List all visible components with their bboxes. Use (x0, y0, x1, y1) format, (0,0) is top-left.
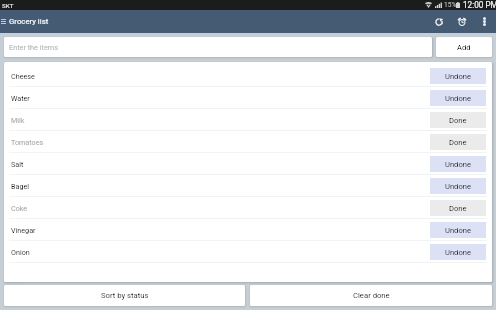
staticText: Done (449, 204, 467, 213)
button[interactable]: Vinegar (4, 219, 492, 241)
button[interactable]: Enter the items (4, 37, 432, 57)
button[interactable]: Salt (4, 153, 492, 175)
button[interactable]: Undone (430, 156, 486, 172)
button[interactable]: Refresh (427, 10, 450, 33)
staticText: Undone (445, 160, 471, 169)
staticText: Undone (445, 248, 471, 257)
staticText: Undone (445, 72, 471, 81)
staticText: Onion (11, 248, 30, 256)
button[interactable]: Open navigation drawer (0, 10, 7, 33)
staticText: Water (11, 94, 30, 102)
button[interactable]: More options (473, 10, 496, 33)
staticText: Undone (445, 182, 471, 191)
staticText: Bagel (11, 182, 29, 190)
button[interactable]: Undone (430, 244, 486, 260)
staticText: Undone (445, 226, 471, 235)
button[interactable]: Clear done (250, 285, 492, 306)
button[interactable]: Sort by status (4, 285, 245, 306)
button[interactable]: Onion (4, 241, 492, 263)
staticText: Enter the items (9, 43, 58, 52)
button[interactable]: Done (430, 112, 486, 128)
button[interactable]: Cheese (4, 65, 492, 87)
button[interactable]: Coke (4, 197, 492, 219)
staticText: Salt (11, 160, 24, 168)
staticText: Done (449, 116, 467, 125)
staticText: Tomatoes (11, 138, 44, 146)
staticText: 12:00 PM (463, 0, 496, 10)
button[interactable]: Add (436, 37, 492, 57)
button[interactable]: Done (430, 200, 486, 216)
button[interactable]: Tomatoes (4, 131, 492, 153)
staticText: Milk (11, 116, 25, 124)
staticText: Clear done (353, 291, 390, 300)
staticText: Add (457, 43, 471, 52)
button[interactable]: Undone (430, 178, 486, 194)
staticText: Coke (11, 204, 28, 212)
button[interactable]: Alarm (450, 10, 473, 33)
staticText: Undone (445, 94, 471, 103)
button[interactable]: Water (4, 87, 492, 109)
button[interactable]: Undone (430, 222, 486, 238)
button[interactable]: Done (430, 134, 486, 150)
button[interactable]: Bagel (4, 175, 492, 197)
staticText: Vinegar (11, 226, 36, 234)
staticText: Sort by status (101, 291, 149, 300)
button[interactable]: Milk (4, 109, 492, 131)
staticText: Cheese (11, 72, 35, 80)
staticText: Done (449, 138, 467, 147)
staticText: Grocery list (9, 17, 49, 26)
staticText: SKT (2, 2, 14, 9)
button[interactable]: Undone (430, 90, 486, 106)
button[interactable]: Undone (430, 68, 486, 84)
staticText: 15% (444, 1, 457, 9)
